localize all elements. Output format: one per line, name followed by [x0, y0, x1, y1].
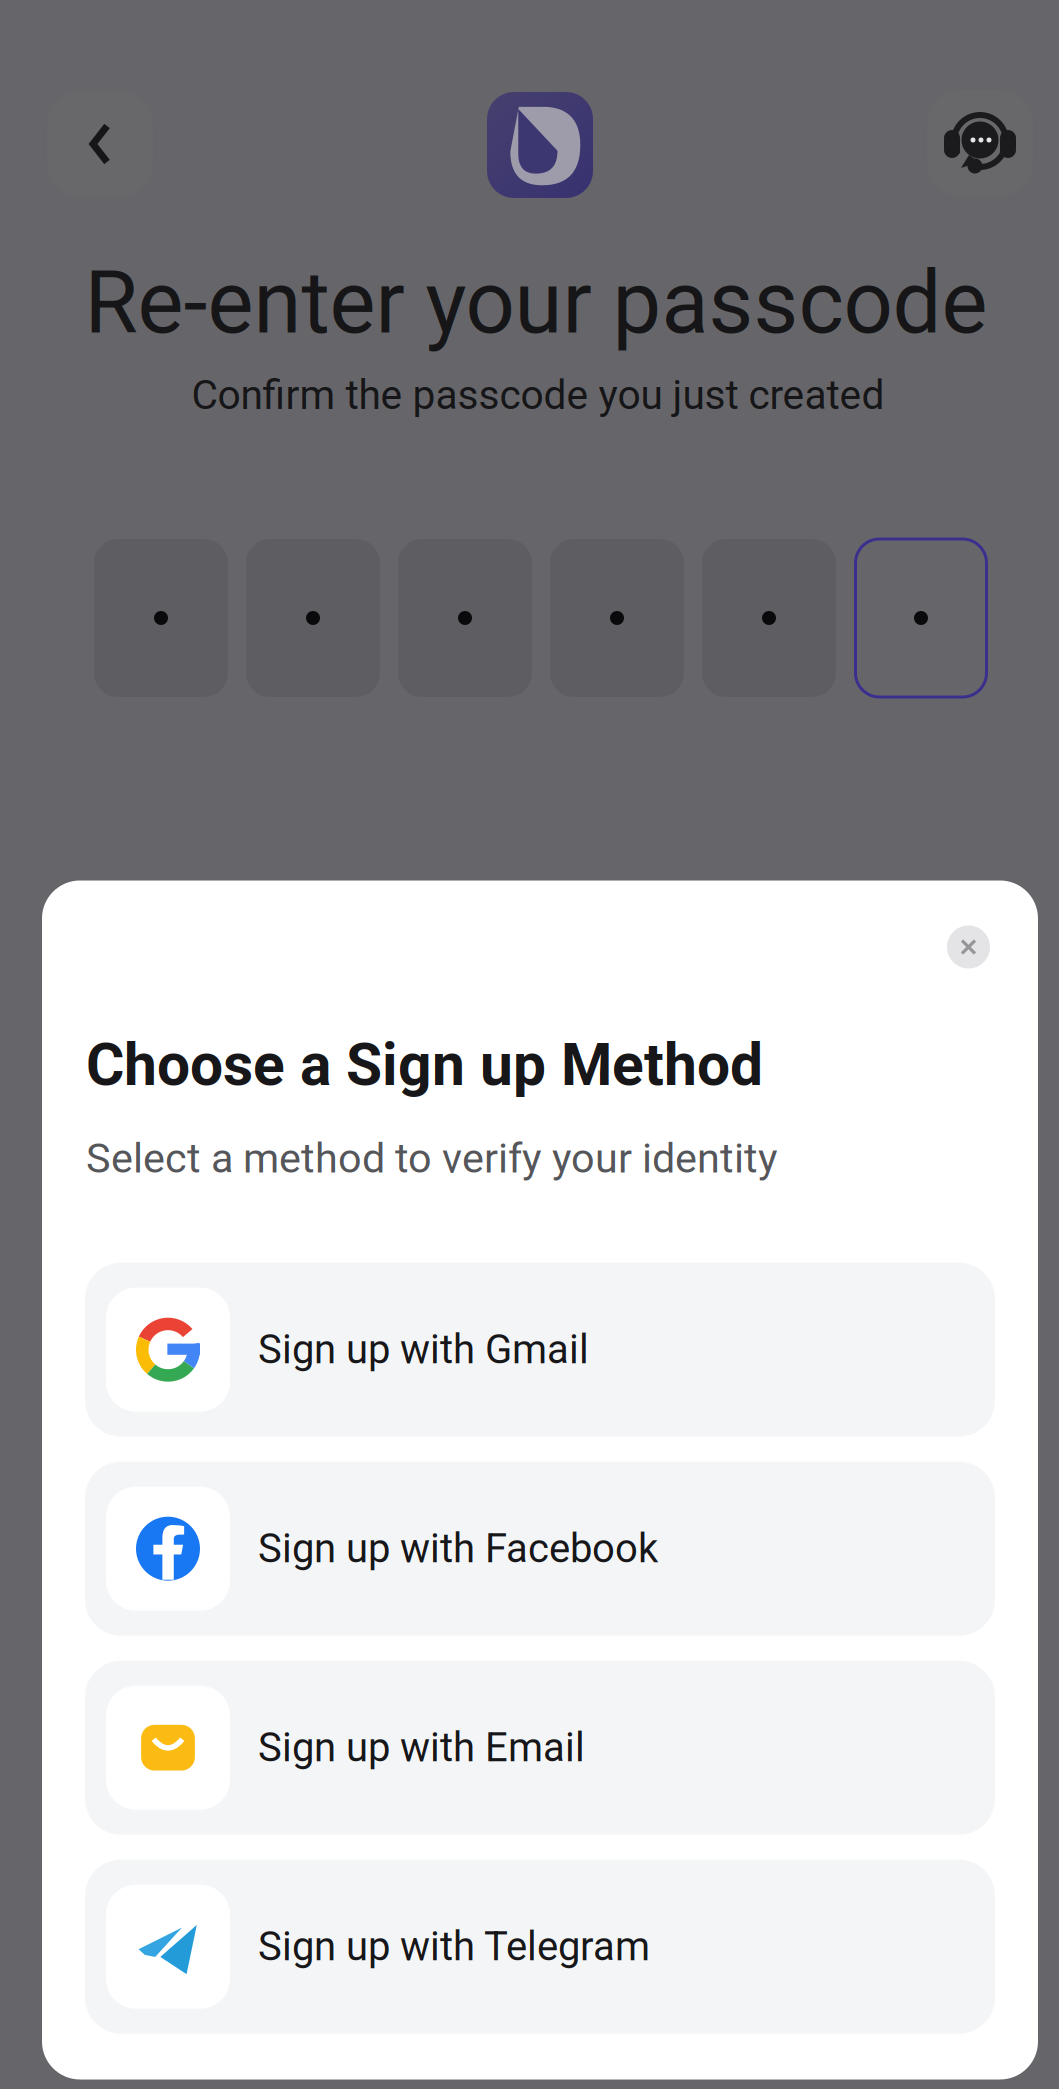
- staticText: Sign up with Telegram: [258, 1923, 650, 1970]
- button[interactable]: Sign up with Facebook: [85, 1462, 995, 1636]
- staticText: Sign up with Gmail: [258, 1326, 589, 1373]
- staticText: Select a method to verify your identity: [86, 1134, 778, 1183]
- button[interactable]: Sign up with Email: [85, 1661, 995, 1835]
- staticText: Re-enter your passcode: [84, 252, 987, 354]
- staticText: Confirm the passcode you just created: [191, 371, 884, 419]
- button[interactable]: Close: [947, 925, 990, 968]
- staticText: Sign up with Facebook: [258, 1525, 658, 1572]
- staticText: Choose a Sign up Method: [86, 1030, 763, 1099]
- button[interactable]: Sign up with Gmail: [85, 1263, 995, 1437]
- button[interactable]: Sign up with Telegram: [85, 1860, 995, 2034]
- button[interactable]: Back: [47, 91, 153, 197]
- button[interactable]: Customer support: [927, 90, 1033, 196]
- staticText: Sign up with Email: [258, 1724, 585, 1771]
